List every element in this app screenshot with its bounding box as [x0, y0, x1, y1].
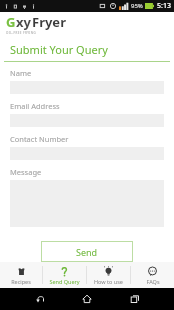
staticText: Name [10, 68, 32, 78]
staticText: xy [16, 13, 31, 31]
staticText: FAQs [146, 278, 160, 285]
staticText: Send Query [49, 278, 80, 285]
button[interactable]: Send Query [43, 262, 86, 288]
button[interactable]: Send [41, 241, 133, 262]
staticText: 95% [131, 2, 143, 10]
button[interactable]: FAQs [131, 262, 174, 288]
staticText: Message [10, 167, 42, 177]
staticText: Recipes [11, 278, 31, 285]
button[interactable]: Back [32, 291, 48, 307]
staticText: G [6, 13, 16, 31]
staticText: How to use [94, 278, 123, 285]
staticText: OIL-FREE FRYING [6, 31, 37, 35]
button[interactable]: Recents [127, 291, 143, 307]
staticText: Email Address [10, 101, 60, 111]
staticText: Contact Number [10, 134, 69, 144]
staticText: Submit Your Query [10, 42, 108, 57]
button[interactable]: How to use [87, 262, 130, 288]
staticText: 5:13 [157, 1, 171, 11]
staticText: Fryer [32, 13, 66, 31]
button[interactable]: Home [79, 291, 95, 307]
staticText: Send [76, 246, 98, 258]
button[interactable]: Recipes [0, 262, 42, 288]
